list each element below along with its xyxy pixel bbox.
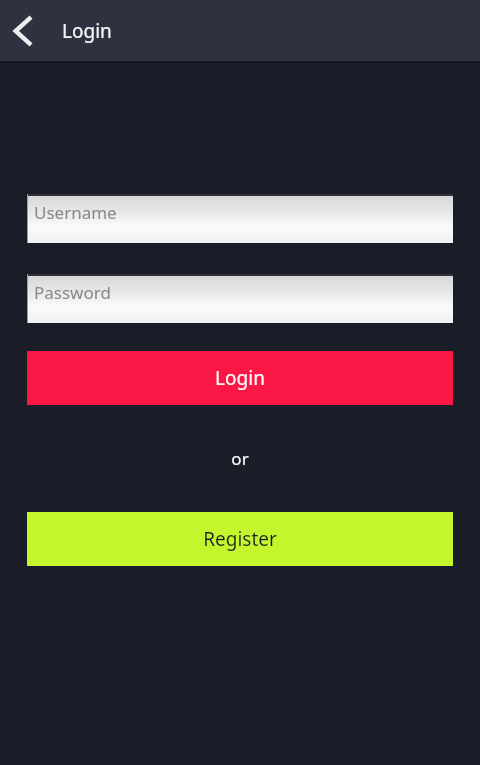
staticText: Login [62,18,112,44]
staticText: Register [203,526,277,552]
button[interactable]: Password [27,274,453,323]
staticText: Login [215,365,265,391]
staticText: or [231,447,249,470]
button[interactable]: Back [0,0,48,61]
button[interactable]: Username [27,194,453,243]
button[interactable]: Login [27,351,453,405]
staticText: Password [34,281,111,304]
staticText: Username [34,201,117,224]
button[interactable]: Register [27,512,453,566]
